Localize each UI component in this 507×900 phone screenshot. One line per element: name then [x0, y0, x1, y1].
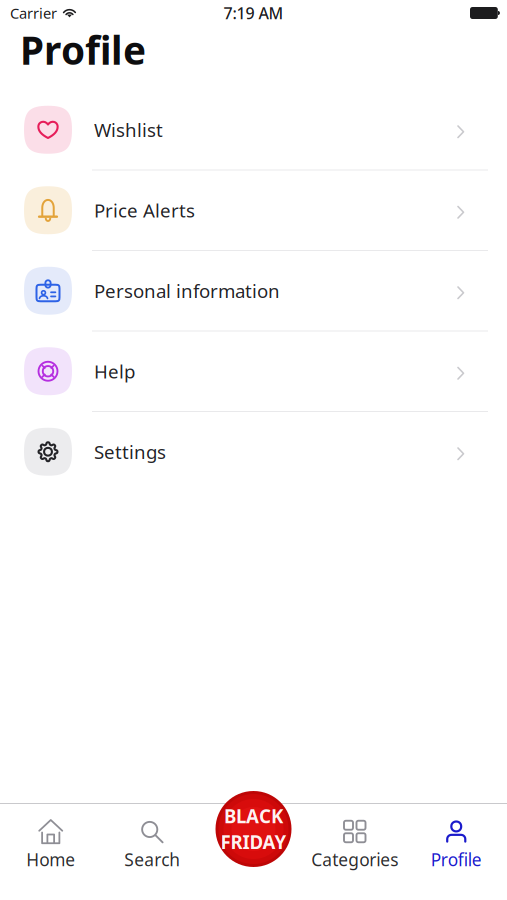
staticText: Help: [94, 359, 135, 384]
staticText: FRIDAY: [220, 829, 286, 854]
staticText: Search: [124, 848, 180, 871]
staticText: Price Alerts: [94, 198, 195, 223]
button[interactable]: Search: [101, 804, 203, 900]
staticText: BLACK: [224, 804, 283, 828]
staticText: Home: [26, 848, 75, 871]
staticText: Profile: [20, 24, 146, 75]
button[interactable]: Settings: [0, 412, 507, 491]
staticText: Carrier: [10, 3, 57, 23]
button[interactable]: Personal information: [0, 251, 507, 330]
staticText: Wishlist: [94, 117, 163, 142]
button[interactable]: Home: [0, 804, 101, 900]
button[interactable]: Profile: [405, 804, 507, 900]
button[interactable]: Price Alerts: [0, 170, 507, 250]
staticText: Profile: [431, 848, 482, 871]
staticText: Settings: [94, 439, 166, 464]
button[interactable]: BLACK: [215, 791, 291, 867]
staticText: Personal information: [94, 278, 280, 303]
button[interactable]: Help: [0, 331, 507, 411]
button[interactable]: Wishlist: [0, 90, 507, 169]
staticText: 7:19 AM: [223, 2, 283, 24]
button[interactable]: Categories: [304, 804, 405, 900]
staticText: Categories: [311, 848, 398, 871]
